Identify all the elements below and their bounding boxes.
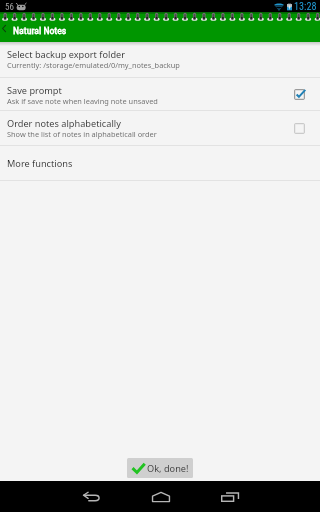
staticText: Natural Notes bbox=[13, 25, 67, 36]
staticText: More functions bbox=[7, 157, 73, 170]
button[interactable]: Save prompt bbox=[0, 78, 320, 110]
staticText: Order notes alphabetically bbox=[7, 117, 121, 130]
button[interactable]: Navigate up bbox=[0, 19, 13, 42]
button[interactable]: Home bbox=[138, 481, 183, 512]
staticText: Show the list of notes in alphabeticall … bbox=[7, 129, 157, 139]
button[interactable]: Ok, done! bbox=[127, 458, 193, 478]
staticText: 13:28 bbox=[294, 1, 317, 13]
button[interactable]: More functions bbox=[0, 146, 320, 180]
staticText: Save prompt bbox=[7, 84, 62, 97]
staticText: Currently: /storage/emulated/0/my_notes_… bbox=[7, 60, 180, 70]
staticText: Select backup export folder bbox=[7, 48, 126, 61]
button[interactable]: Select backup export folder bbox=[0, 42, 320, 77]
button[interactable]: Order notes alphabetically bbox=[0, 111, 320, 145]
staticText: Ok, done! bbox=[147, 462, 189, 475]
staticText: Ask if save note when leaving note unsav… bbox=[7, 96, 158, 106]
staticText: 56 bbox=[5, 2, 14, 13]
button[interactable]: Recent apps bbox=[207, 481, 252, 512]
button[interactable]: Back bbox=[69, 481, 114, 512]
